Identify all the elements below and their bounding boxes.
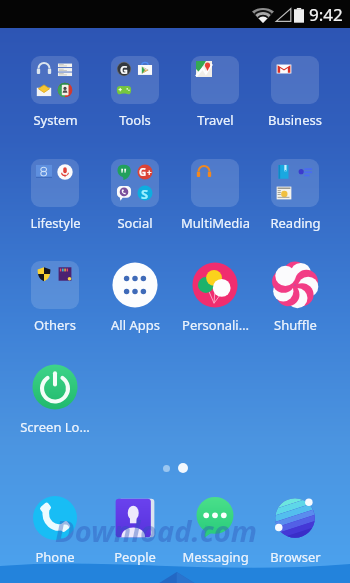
button[interactable]: Business	[255, 56, 335, 129]
staticText: Travel	[197, 111, 234, 129]
staticText: Browser	[270, 548, 321, 566]
staticText: Phone	[35, 548, 75, 566]
other: Personalization	[191, 261, 239, 309]
button[interactable]: Phone	[15, 496, 95, 566]
staticText: People	[114, 548, 156, 566]
staticText: S	[141, 185, 149, 201]
button[interactable]: Others	[15, 261, 95, 334]
button[interactable]: MultiMedia	[175, 159, 255, 232]
other: Screen Lock	[31, 363, 79, 411]
button[interactable]: Personalization	[175, 261, 255, 334]
button[interactable]: Travel	[175, 56, 255, 129]
staticText: System	[33, 111, 78, 129]
staticText: Screen Lo…	[20, 418, 90, 436]
button[interactable]: Screen Lock	[15, 363, 95, 436]
staticText: Others	[34, 316, 76, 334]
button[interactable]: Lifestyle	[15, 159, 95, 232]
staticText: Download.com	[55, 511, 257, 550]
staticText: Reading	[270, 214, 321, 232]
staticText: Lifestyle	[30, 214, 81, 232]
button[interactable]: System	[15, 56, 95, 129]
staticText: +	[147, 167, 152, 178]
staticText: Tools	[119, 111, 151, 129]
button[interactable]: Reading	[255, 159, 335, 232]
staticText: Personali…	[182, 316, 249, 334]
button[interactable]: G	[95, 56, 175, 129]
button[interactable]: Messaging	[175, 496, 255, 566]
button[interactable]: Shuffle	[255, 261, 335, 334]
staticText: Social	[117, 214, 153, 232]
staticText: G	[120, 62, 128, 77]
staticText: G	[139, 165, 147, 179]
staticText: 9:42	[309, 3, 343, 26]
button[interactable]: People	[95, 496, 175, 566]
staticText: MultiMedia	[181, 214, 250, 232]
staticText: Messaging	[182, 548, 249, 566]
staticText: Shuffle	[274, 316, 317, 334]
staticText: All Apps	[111, 316, 160, 334]
button[interactable]: Browser	[255, 496, 335, 566]
other: Shuffle	[271, 261, 319, 309]
button[interactable]: G	[95, 159, 175, 232]
button[interactable]: All Apps	[95, 261, 175, 334]
staticText: Business	[268, 111, 322, 129]
other: All Apps	[111, 261, 159, 309]
